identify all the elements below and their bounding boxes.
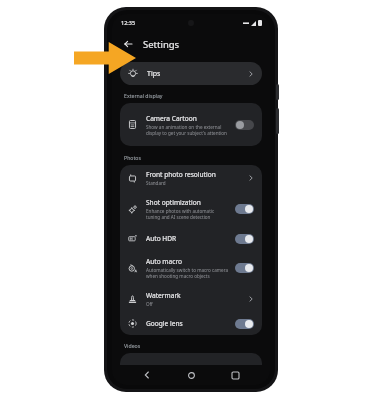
staticText: Standard [146, 180, 166, 186]
button[interactable]: Front photo resolution [120, 165, 262, 191]
button[interactable]: On [235, 319, 254, 329]
button[interactable]: Shot optimization [120, 191, 262, 227]
button[interactable]: Back [121, 37, 135, 51]
button[interactable]: Google lens [120, 312, 262, 335]
staticText: Settings [143, 38, 180, 51]
staticText: Tips [147, 69, 161, 79]
staticText: Watermark [146, 291, 181, 300]
staticText: Photos [124, 154, 141, 161]
button[interactable]: Back [138, 366, 156, 384]
button[interactable]: Recent apps [226, 366, 244, 384]
staticText: Auto macro [146, 257, 182, 266]
staticText: Google lens [146, 319, 183, 328]
staticText: Videos [124, 342, 141, 349]
staticText: Automatically switch to macro camera whe… [146, 267, 229, 279]
staticText: Show an animation on the external displa… [146, 124, 229, 136]
button[interactable]: On [235, 234, 254, 244]
button[interactable]: Auto macro [120, 250, 262, 286]
button[interactable]: Tips [120, 62, 262, 85]
staticText: Off [146, 301, 153, 307]
staticText: Shot optimization [146, 198, 201, 207]
staticText: External display [124, 92, 163, 99]
button[interactable]: Watermark [120, 286, 262, 312]
staticText: Auto HDR [146, 234, 177, 243]
staticText: 12:35 [121, 19, 136, 26]
button[interactable]: Home [182, 366, 200, 384]
button[interactable]: Auto HDR [120, 227, 262, 250]
button[interactable]: Off [235, 120, 254, 130]
button[interactable]: On [235, 204, 254, 214]
button[interactable]: Camera Cartoon [120, 103, 262, 146]
staticText: Enhance photos with automatic tuning and… [146, 208, 229, 220]
staticText: Front photo resolution [146, 170, 216, 179]
staticText: Camera Cartoon [146, 114, 197, 123]
button[interactable]: On [235, 263, 254, 273]
